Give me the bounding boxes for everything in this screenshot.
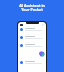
button[interactable]: [18, 61, 46, 64]
staticText: AI Assistant in Your Pocket: [19, 3, 45, 12]
button[interactable]: [18, 36, 46, 39]
button[interactable]: [18, 28, 46, 31]
button[interactable]: [18, 44, 46, 47]
